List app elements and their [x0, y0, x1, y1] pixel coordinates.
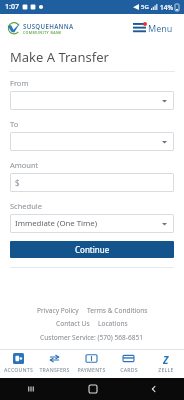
staticText: COMMUNITY BANK [23, 30, 62, 35]
staticText: Amount [10, 160, 39, 170]
staticText: Make A Transfer [10, 48, 109, 66]
staticText: CARDS [120, 366, 138, 373]
staticText: Immediate (One Time) [15, 218, 98, 229]
button[interactable] [10, 132, 174, 151]
button[interactable]: $ [10, 173, 174, 192]
button[interactable]: Back [123, 378, 184, 400]
button[interactable]: Z [147, 350, 184, 378]
button[interactable]: Recent apps [0, 378, 62, 400]
button[interactable]: TRANSFERS [36, 350, 73, 378]
staticText: $ [15, 177, 20, 188]
button[interactable]: CARDS [110, 350, 147, 378]
button[interactable]: SUSQUEHANNA [7, 21, 74, 35]
staticText: SUSQUEHANNA [23, 22, 74, 30]
button[interactable]: Continue [10, 241, 174, 258]
staticText: 1:07 [5, 2, 19, 12]
staticText: ACCOUNTS [4, 366, 33, 373]
button[interactable]: Home [62, 378, 123, 400]
button[interactable]: Customer Service: (570) 568-6851 [36, 332, 148, 343]
staticText: Menu [148, 22, 173, 34]
button[interactable]: Menu [130, 19, 176, 37]
staticText: To [10, 119, 19, 129]
button[interactable]: ACCOUNTS [0, 350, 36, 378]
staticText: ZELLE [158, 366, 174, 373]
button[interactable]: Privacy Policy [33, 304, 83, 317]
staticText: Schedule [10, 201, 42, 211]
staticText: Terms & Conditions [87, 306, 148, 315]
staticText: Z [163, 353, 169, 364]
staticText: PAYMENTS [77, 366, 106, 373]
staticText: 5G [141, 3, 149, 11]
button[interactable]: PAYMENTS [73, 350, 110, 378]
button[interactable]: Locations [94, 317, 132, 330]
button[interactable]: Terms & Conditions [83, 304, 152, 317]
staticText: Privacy Policy [37, 306, 79, 315]
button[interactable]: Immediate (One Time) [10, 214, 174, 233]
button[interactable] [10, 91, 174, 110]
staticText: 14% [160, 3, 173, 12]
staticText: Contact Us [56, 319, 90, 328]
staticText: Locations [98, 319, 128, 328]
staticText: TRANSFERS [39, 366, 70, 373]
staticText: From [10, 78, 29, 88]
staticText: Customer Service: (570) 568-6851 [40, 333, 144, 342]
button[interactable]: Contact Us [52, 317, 94, 330]
staticText: Continue [75, 244, 110, 255]
